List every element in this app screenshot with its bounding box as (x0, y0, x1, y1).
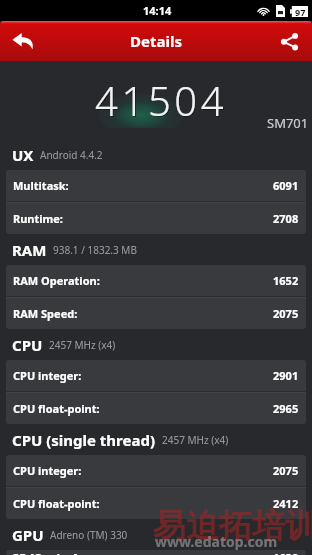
staticText: 14:14 (143, 3, 172, 18)
staticText: RAM Speed: (13, 306, 78, 321)
button[interactable]: CPU integer: (6, 455, 306, 486)
staticText: CPU (single thread) (12, 430, 156, 450)
button[interactable]: Runtime: (6, 203, 306, 234)
staticText: CPU integer: (13, 463, 82, 478)
staticText: Adreno (TM) 330 (50, 528, 128, 542)
button[interactable]: CPU float-point: (6, 488, 306, 519)
staticText: 2457 MHz (x4) (162, 433, 229, 447)
staticText: 2075 (273, 463, 299, 478)
staticText: 2965 (273, 401, 299, 416)
button[interactable]: CPU integer: (6, 360, 306, 391)
staticText: 2901 (273, 368, 299, 383)
staticText: CPU float-point: (13, 401, 100, 416)
button[interactable]: RAM Operation: (6, 265, 306, 296)
staticText: 938.1 / 1832.3 MB (53, 243, 137, 257)
staticText: CPU (12, 335, 43, 355)
button[interactable]: 3D [Garden]: (6, 550, 306, 555)
staticText: SM701 (267, 114, 309, 132)
staticText: RAM (12, 240, 47, 260)
staticText: CPU integer: (13, 368, 82, 383)
button[interactable]: Share (266, 21, 312, 61)
button[interactable]: CPU float-point: (6, 393, 306, 424)
button[interactable]: Back (0, 21, 46, 61)
staticText: 6091 (273, 178, 299, 193)
staticText: 1652 (273, 273, 299, 288)
staticText: 2412 (273, 496, 299, 511)
staticText: Multitask: (13, 178, 69, 193)
staticText: 1638 (273, 550, 299, 555)
staticText: GPU (12, 525, 44, 545)
staticText: Runtime: (13, 211, 63, 226)
staticText: Details (130, 31, 182, 51)
staticText: 2708 (273, 211, 299, 226)
staticText: Android 4.4.2 (40, 148, 103, 162)
staticText: 97 (295, 6, 306, 17)
staticText: CPU float-point: (13, 496, 100, 511)
staticText: 2457 MHz (x4) (49, 338, 116, 352)
staticText: RAM Operation: (13, 273, 100, 288)
staticText: 41504 (95, 73, 228, 127)
button[interactable]: RAM Speed: (6, 298, 306, 329)
staticText: www.edatop.com (155, 532, 278, 551)
staticText: UX (12, 145, 34, 165)
staticText: 易迫拓培训 (153, 505, 312, 547)
staticText: 41504 (96, 74, 229, 128)
button[interactable]: Multitask: (6, 170, 306, 201)
staticText: 2075 (273, 306, 299, 321)
staticText: 3D [Garden]: (13, 550, 81, 555)
